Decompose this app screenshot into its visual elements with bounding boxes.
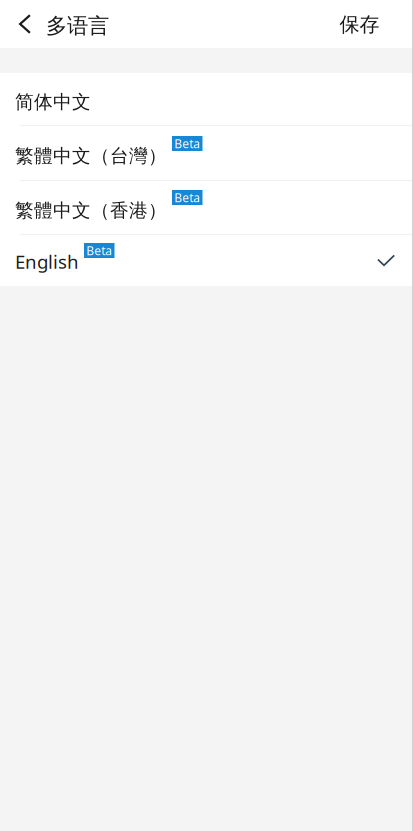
staticText: 多语言 — [46, 13, 109, 39]
staticText: Beta — [174, 189, 200, 205]
button[interactable]: English — [0, 235, 413, 286]
staticText: Beta — [174, 135, 200, 151]
staticText: 保存 — [339, 12, 379, 37]
button[interactable]: 繁體中文（香港） — [0, 181, 413, 234]
staticText: 繁體中文（香港） — [15, 199, 167, 222]
button[interactable]: Back — [0, 0, 46, 48]
staticText: English — [15, 249, 79, 274]
staticText: 简体中文 — [15, 90, 91, 113]
staticText: 繁體中文（台灣） — [15, 144, 167, 167]
button[interactable]: 简体中文 — [0, 73, 413, 125]
button[interactable]: 保存 — [320, 0, 413, 48]
staticText: Beta — [86, 242, 112, 258]
button[interactable]: 繁體中文（台灣） — [0, 126, 413, 180]
